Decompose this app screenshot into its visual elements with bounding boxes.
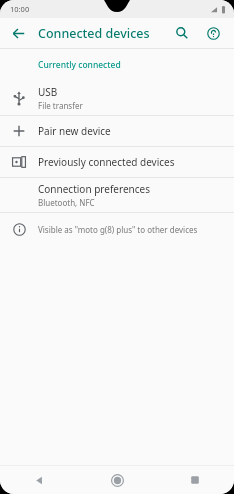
button[interactable]: Previously connected devices: [0, 147, 234, 177]
staticText: File transfer: [38, 100, 83, 111]
staticText: Connection preferences: [38, 182, 150, 196]
staticText: Bluetooth, NFC: [38, 197, 95, 208]
staticText: Pair new device: [38, 124, 111, 138]
staticText: 10:00: [10, 4, 30, 14]
button[interactable]: Visible as "moto g(8) plus" to other dev…: [0, 213, 234, 245]
button[interactable]: Back: [6, 21, 30, 45]
button[interactable]: USB: [0, 81, 234, 115]
staticText: Currently connected: [38, 59, 121, 71]
button[interactable]: Home: [78, 466, 156, 494]
button[interactable]: Pair new device: [0, 116, 234, 146]
staticText: Visible as "moto g(8) plus" to other dev…: [38, 224, 198, 235]
button[interactable]: Back: [0, 466, 78, 494]
button[interactable]: Search: [170, 21, 194, 45]
button[interactable]: Recent apps: [156, 466, 234, 494]
staticText: USB: [38, 85, 58, 99]
button[interactable]: Connection preferences: [0, 178, 234, 212]
button[interactable]: Help: [201, 21, 225, 45]
staticText: Connected devices: [38, 25, 150, 42]
staticText: Previously connected devices: [38, 155, 175, 169]
